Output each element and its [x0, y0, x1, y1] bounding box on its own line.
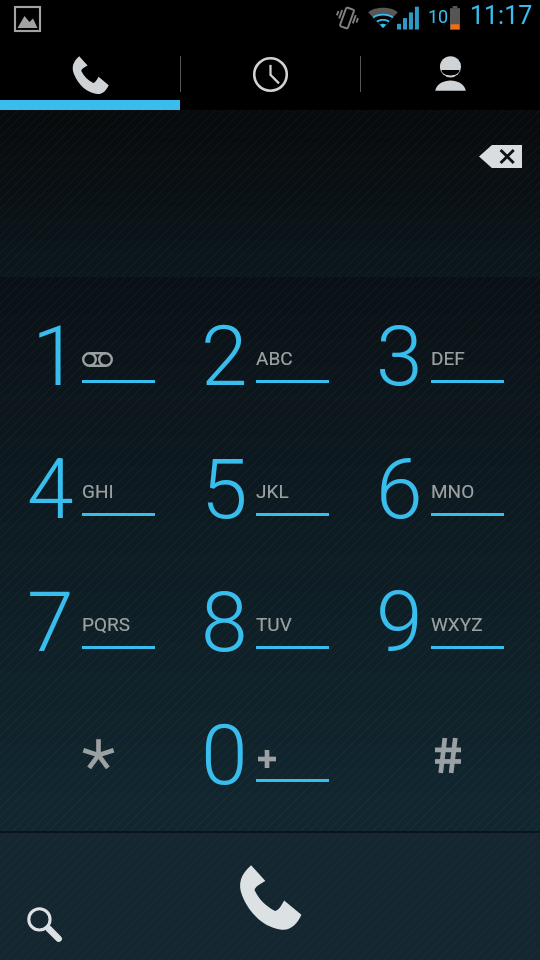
button[interactable]: 0 [175, 676, 350, 809]
button[interactable]: 8 [175, 543, 350, 676]
staticText: 11:17 [470, 1, 533, 30]
staticText: 8 [201, 573, 248, 671]
staticText: 5 [201, 440, 248, 538]
button[interactable]: Call [224, 850, 314, 940]
button[interactable]: 6 [350, 410, 525, 543]
button[interactable]: Call log tab [180, 36, 360, 110]
staticText: TUV [256, 613, 292, 633]
staticText: 1 [32, 307, 79, 405]
staticText: JKL [256, 480, 289, 500]
staticText: 4 [27, 440, 74, 538]
button[interactable]: 1 [0, 277, 175, 410]
button[interactable]: Backspace [461, 126, 539, 186]
button[interactable] [0, 676, 175, 809]
staticText: GHI [82, 480, 114, 500]
staticText: 3 [376, 307, 423, 405]
button[interactable]: 3 [350, 277, 525, 410]
button[interactable]: 5 [175, 410, 350, 543]
staticText: 10 [428, 6, 449, 27]
staticText: 0 [201, 706, 248, 804]
staticText: 6 [376, 440, 423, 538]
staticText: 7 [27, 573, 74, 671]
staticText: 9 [376, 573, 423, 671]
staticText: MNO [431, 480, 475, 500]
button[interactable]: 7 [0, 543, 175, 676]
button[interactable]: Search [10, 890, 80, 960]
staticText: 2 [201, 307, 248, 405]
staticText: WXYZ [431, 613, 483, 633]
button[interactable]: 9 [350, 543, 525, 676]
staticText: ABC [256, 347, 293, 367]
button[interactable]: 4 [0, 410, 175, 543]
staticText: PQRS [82, 613, 131, 633]
button[interactable]: Dialpad tab [0, 36, 180, 110]
button[interactable]: 2 [175, 277, 350, 410]
button[interactable] [350, 676, 525, 809]
staticText: DEF [431, 347, 465, 367]
button[interactable]: Contacts tab [360, 36, 540, 110]
